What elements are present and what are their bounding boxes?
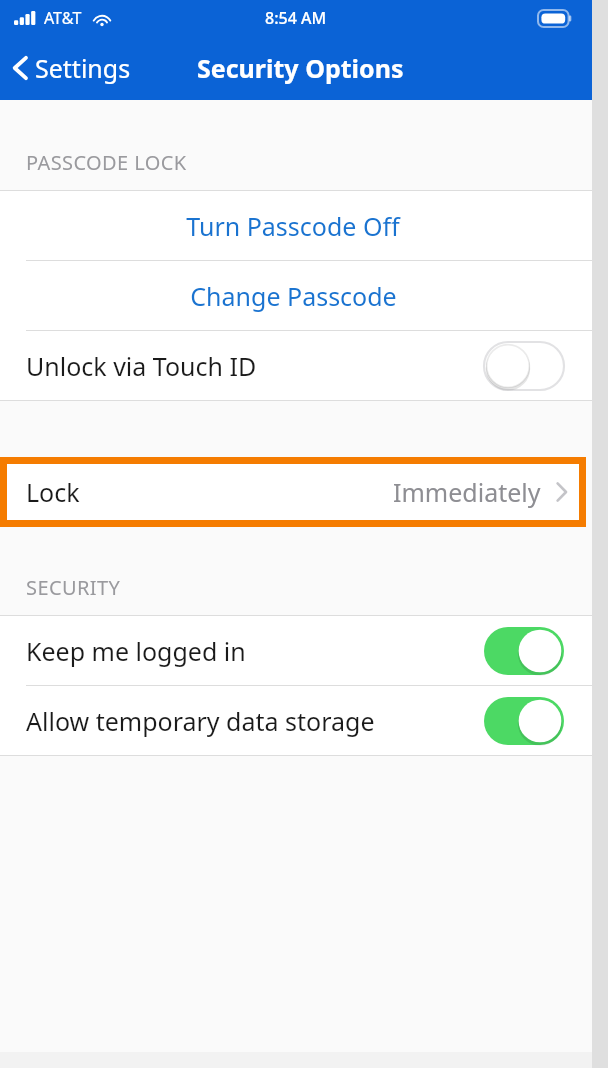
button[interactable]: Settings (0, 43, 143, 93)
staticText: AT&T (44, 7, 82, 29)
staticText: Keep me logged in (26, 634, 246, 668)
button[interactable]: Toggle on (484, 697, 564, 745)
staticText: 8:54 AM (265, 7, 327, 29)
button[interactable]: Toggle on (484, 627, 564, 675)
staticText: SECURITY (26, 574, 121, 601)
button[interactable]: Toggle off (484, 342, 564, 390)
staticText: Settings (35, 51, 131, 85)
button[interactable]: Change Passcode (0, 261, 592, 330)
staticText: Turn Passcode Off (186, 209, 400, 243)
staticText: Allow temporary data storage (26, 704, 375, 738)
staticText: Security Options (197, 51, 404, 85)
button[interactable]: Turn Passcode Off (0, 191, 592, 260)
staticText: Immediately (393, 475, 541, 509)
button[interactable]: Allow temporary data storage (0, 686, 592, 755)
button[interactable]: Unlock via Touch ID (0, 331, 592, 400)
staticText: Lock (26, 475, 80, 509)
button[interactable]: Keep me logged in (0, 616, 592, 685)
button[interactable]: Lock (0, 457, 586, 527)
staticText: Change Passcode (190, 279, 397, 313)
staticText: PASSCODE LOCK (26, 149, 187, 176)
staticText: Unlock via Touch ID (26, 349, 257, 383)
